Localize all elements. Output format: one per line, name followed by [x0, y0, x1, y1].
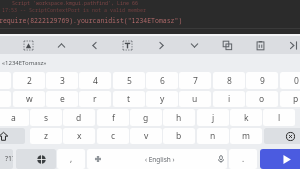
button[interactable]: Copy	[211, 36, 244, 54]
button[interactable]: 5	[113, 72, 145, 89]
button[interactable]: i	[213, 91, 245, 107]
staticText: «1234ETomasz»	[2, 59, 47, 67]
staticText: c	[111, 130, 116, 142]
button[interactable]: 8	[213, 72, 245, 89]
button[interactable]: Move to end	[277, 36, 300, 54]
staticText: 8	[227, 75, 232, 87]
button[interactable]: 0	[280, 72, 300, 89]
staticText: 4	[93, 75, 98, 87]
button[interactable]: 9	[246, 72, 278, 89]
button[interactable]: Backspace	[264, 128, 300, 144]
button[interactable]: Paste	[244, 36, 277, 54]
staticText: 5	[127, 75, 132, 87]
staticText: j	[212, 112, 215, 124]
staticText: b	[176, 130, 182, 142]
staticText: o	[259, 93, 265, 105]
button[interactable]: k	[230, 109, 262, 126]
button[interactable]: 4	[79, 72, 111, 89]
staticText: g	[143, 112, 149, 124]
staticText: ,	[70, 153, 73, 164]
button[interactable]: Change language	[16, 149, 56, 169]
button[interactable]: Enter	[260, 149, 300, 169]
button[interactable]: z	[30, 128, 62, 144]
button[interactable]: c	[97, 128, 129, 144]
button[interactable]: f	[97, 109, 129, 126]
button[interactable]: 2	[13, 72, 45, 89]
button[interactable]: v	[130, 128, 162, 144]
staticText: ?1?	[5, 154, 13, 164]
button[interactable]: x	[63, 128, 95, 144]
button[interactable]: h	[163, 109, 195, 126]
button[interactable]: w	[13, 91, 45, 107]
staticText: 17:53 -- ScriptContextPort is not a vali…	[2, 7, 147, 14]
staticText: i	[228, 93, 231, 105]
staticText: t	[127, 93, 131, 105]
button[interactable]: .	[229, 149, 257, 169]
button[interactable]: Move down	[178, 36, 211, 54]
staticText: v	[144, 130, 149, 142]
staticText: l	[278, 112, 281, 124]
staticText: require(8222129769).yourcanidist("1234ET…	[0, 16, 183, 25]
staticText: 2	[27, 75, 32, 87]
staticText: z	[44, 130, 48, 142]
staticText: h	[176, 112, 182, 124]
button[interactable]: ‹ English ›	[87, 149, 227, 169]
staticText: x	[77, 130, 82, 142]
button[interactable]: 7	[179, 72, 211, 89]
button[interactable]: a	[0, 109, 29, 126]
button[interactable]: j	[197, 109, 229, 126]
button[interactable]: l	[263, 109, 295, 126]
button[interactable]: g	[130, 109, 162, 126]
button[interactable]: Select text	[111, 36, 144, 54]
button[interactable]: 6	[146, 72, 178, 89]
button[interactable]: «1234ETomasz»	[0, 54, 62, 70]
button[interactable]: Shift	[0, 128, 25, 144]
staticText: .	[242, 153, 245, 164]
staticText: u	[192, 93, 198, 105]
button[interactable]: r	[79, 91, 111, 107]
staticText: 9	[260, 75, 265, 87]
staticText: Script 'workspace.kmgui.pathfind', Line …	[12, 0, 139, 7]
staticText: 0	[294, 75, 299, 87]
staticText: 3	[60, 75, 65, 87]
staticText: a	[11, 112, 16, 124]
staticText: e	[60, 93, 65, 105]
staticText: k	[244, 112, 249, 124]
button[interactable]: e	[46, 91, 78, 107]
button[interactable]: p	[280, 91, 300, 107]
button[interactable]: 3	[46, 72, 78, 89]
staticText: y	[160, 93, 165, 105]
button[interactable]: ?1?	[0, 149, 13, 169]
staticText: p	[293, 93, 299, 105]
button[interactable]: Move left	[78, 36, 111, 54]
button[interactable]: Move up	[45, 36, 78, 54]
staticText: 7	[193, 75, 198, 87]
button[interactable]: b	[163, 128, 195, 144]
button[interactable]: m	[230, 128, 262, 144]
staticText: r	[93, 93, 97, 105]
button[interactable]: o	[246, 91, 278, 107]
button[interactable]: n	[197, 128, 229, 144]
staticText: f	[112, 112, 115, 124]
button[interactable]: t	[113, 91, 145, 107]
staticText: ‹ English ›	[145, 155, 175, 164]
button[interactable]: u	[179, 91, 211, 107]
button[interactable]: d	[63, 109, 95, 126]
button[interactable]: Select all	[12, 36, 45, 54]
button[interactable]: ,	[57, 149, 85, 169]
staticText: n	[210, 130, 216, 142]
button[interactable]: s	[30, 109, 62, 126]
staticText: w	[26, 93, 33, 105]
button[interactable]: y	[146, 91, 178, 107]
staticText: d	[76, 112, 82, 124]
staticText: m	[242, 130, 250, 142]
button[interactable]: Move right	[145, 36, 178, 54]
staticText: 6	[160, 75, 165, 87]
staticText: s	[44, 112, 49, 124]
